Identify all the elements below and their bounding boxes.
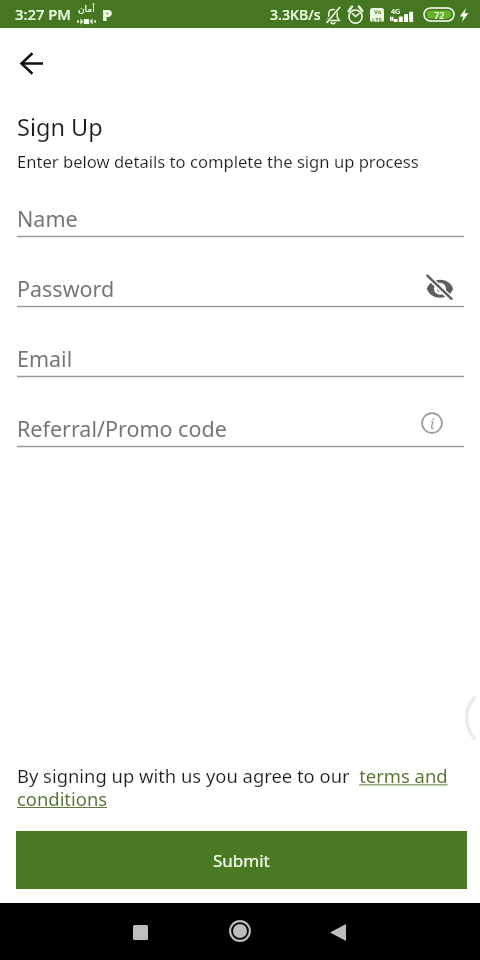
staticText: 4G	[391, 7, 401, 17]
button[interactable]: Back	[7, 39, 55, 87]
button[interactable]: Recents	[117, 909, 163, 955]
staticText: LTE	[372, 16, 383, 22]
button[interactable]: Home	[217, 908, 263, 954]
staticText: i	[430, 414, 435, 433]
staticText: Email	[17, 344, 73, 373]
staticText: 72	[434, 9, 445, 21]
button[interactable]: Referral code info	[415, 406, 449, 440]
staticText: Enter below details to complete the sign…	[17, 150, 419, 173]
staticText: Referral/Promo code	[17, 414, 227, 443]
staticText: أمان	[78, 4, 95, 14]
staticText: P	[102, 4, 113, 26]
button[interactable]: Submit	[16, 831, 467, 889]
button[interactable]: Referral/Promo code	[0, 378, 480, 448]
button[interactable]: Name	[0, 168, 480, 238]
staticText: Vo	[374, 8, 382, 16]
staticText: 3:27 PM	[15, 4, 71, 24]
button[interactable]: Password	[0, 238, 480, 308]
staticText: Submit	[213, 849, 270, 872]
button[interactable]: Back	[315, 909, 361, 955]
staticText: Sign Up	[17, 111, 103, 143]
button[interactable]: By signing up with us you agree to our t…	[17, 763, 464, 811]
staticText: 3.3KB/s	[270, 5, 321, 24]
staticText: Name	[17, 204, 78, 233]
button[interactable]: Email	[0, 308, 480, 378]
staticText: Password	[17, 274, 115, 303]
button[interactable]: Show password	[420, 268, 460, 308]
